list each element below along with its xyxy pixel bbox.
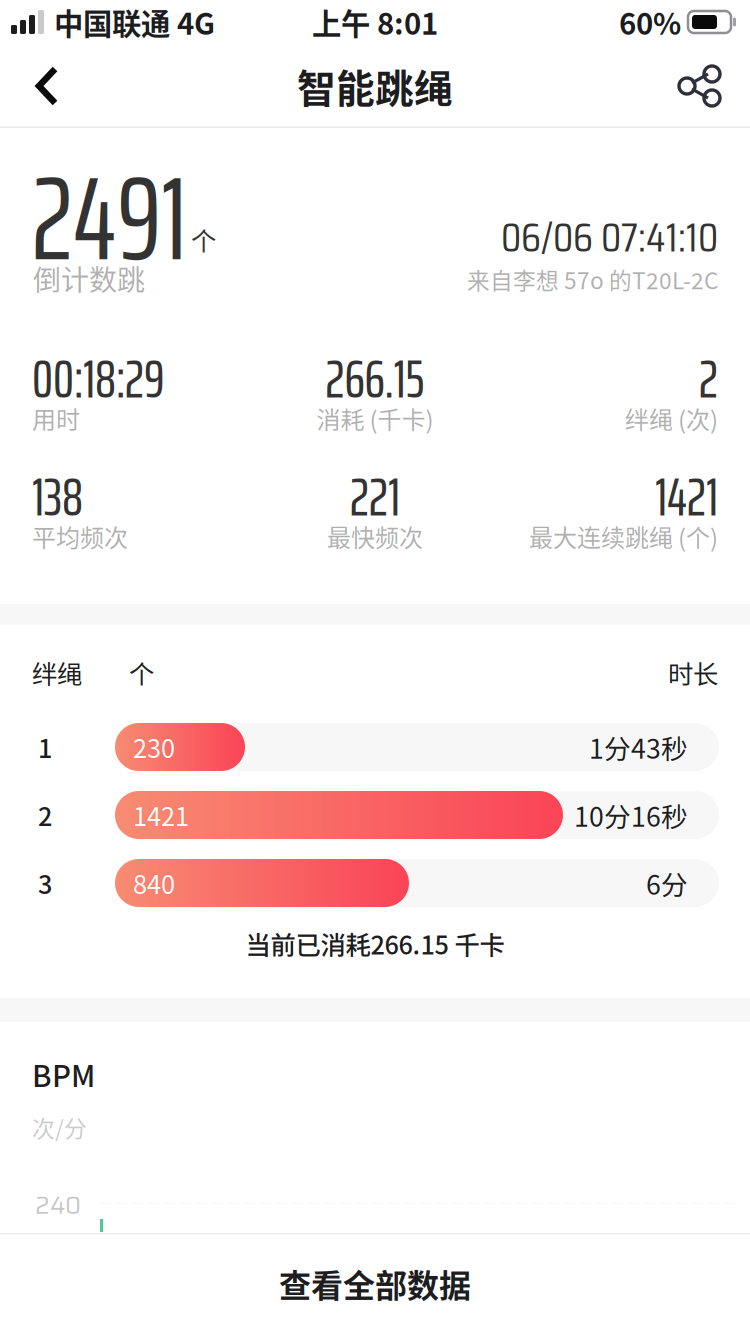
staticText: 最快频次	[327, 519, 423, 554]
staticText: 00:18:29	[32, 337, 164, 421]
staticText: 840	[133, 865, 175, 901]
staticText: 138	[32, 455, 83, 539]
button[interactable]: 返回	[0, 44, 94, 128]
staticText: 上午 8:01	[312, 1, 438, 43]
staticText: 1421	[655, 455, 718, 539]
staticText: 2	[699, 337, 718, 421]
staticText: 266.15	[325, 337, 424, 421]
button[interactable]: 查看全部数据	[0, 1233, 750, 1334]
staticText: 查看全部数据	[279, 1260, 471, 1307]
staticText: 消耗 (千卡)	[316, 401, 433, 436]
staticText: 6分	[646, 864, 688, 902]
staticText: 用时	[32, 401, 80, 436]
staticText: 时长	[668, 654, 718, 691]
staticText: 平均频次	[32, 519, 128, 554]
staticText: 2491	[32, 126, 187, 311]
staticText: 个	[191, 221, 216, 258]
staticText: 最大连续跳绳 (个)	[529, 519, 718, 554]
staticText: 绊绳	[32, 654, 82, 691]
staticText: 绊绳 (次)	[625, 401, 718, 436]
staticText: 230	[133, 729, 175, 765]
staticText: 倒计数跳	[33, 258, 145, 298]
staticText: BPM	[32, 1053, 95, 1095]
staticText: 60%	[619, 1, 681, 43]
staticText: 1421	[133, 797, 189, 833]
staticText: 当前已消耗266.15 千卡	[245, 925, 504, 962]
staticText: 个	[129, 654, 154, 691]
staticText: 240	[35, 1185, 81, 1225]
staticText: 次/分	[32, 1111, 87, 1144]
staticText: 1分43秒	[589, 728, 688, 766]
staticText: 来自李想 57o 的T20L-2C	[467, 263, 718, 296]
staticText: 智能跳绳	[297, 58, 453, 114]
button[interactable]: 分享	[650, 44, 750, 128]
staticText: 3	[38, 865, 52, 901]
staticText: 10分16秒	[574, 796, 688, 834]
staticText: 2	[38, 797, 52, 833]
staticText: 06/06 07:41:10	[501, 206, 718, 269]
staticText: 221	[350, 455, 400, 539]
staticText: 1	[38, 729, 52, 765]
staticText: 中国联通 4G	[54, 1, 215, 43]
